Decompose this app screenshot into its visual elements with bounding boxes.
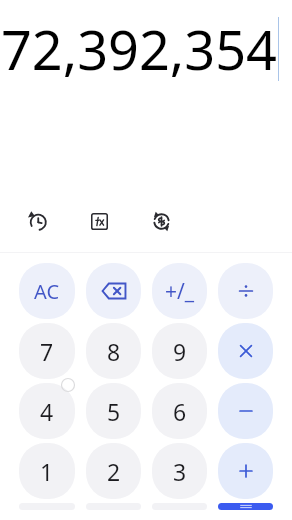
- button[interactable]: 5: [86, 383, 141, 439]
- staticText: 6: [173, 396, 187, 427]
- button[interactable]: 7: [19, 323, 75, 379]
- button[interactable]: Divide: [218, 263, 273, 319]
- button[interactable]: Scientific: [82, 204, 116, 238]
- staticText: 8: [107, 336, 121, 367]
- button[interactable]: 3: [152, 443, 207, 499]
- staticText: 7: [40, 336, 54, 367]
- button[interactable]: History: [20, 204, 54, 238]
- staticText: 1: [40, 456, 54, 487]
- staticText: 5: [107, 396, 121, 427]
- staticText: 9: [173, 336, 187, 367]
- button[interactable]: Currency converter: [144, 204, 178, 238]
- staticText: +/_: [165, 277, 195, 306]
- staticText: 72,392,354: [0, 12, 277, 86]
- button[interactable]: Plus: [218, 443, 273, 499]
- staticText: 4: [40, 396, 54, 427]
- button[interactable]: 6: [152, 383, 207, 439]
- button[interactable]: 4: [19, 383, 75, 439]
- button[interactable]: AC: [19, 263, 75, 319]
- staticText: 2: [107, 456, 121, 487]
- button[interactable]: Equals: [218, 503, 273, 510]
- button[interactable]: +/_: [152, 263, 207, 319]
- button[interactable]: Backspace: [86, 263, 141, 319]
- button[interactable]: 8: [86, 323, 141, 379]
- button[interactable]: Multiply: [218, 323, 273, 379]
- button[interactable]: 2: [86, 443, 141, 499]
- button[interactable]: Minus: [218, 383, 273, 439]
- button[interactable]: 9: [152, 323, 207, 379]
- button[interactable]: 1: [19, 443, 75, 499]
- staticText: 3: [173, 456, 187, 487]
- staticText: AC: [34, 278, 60, 305]
